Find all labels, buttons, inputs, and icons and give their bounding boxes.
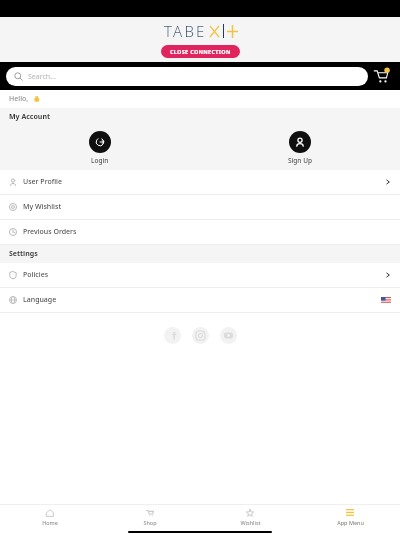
button[interactable]: Previous Orders [0,220,400,244]
staticText: Settings [9,249,38,259]
staticText: Login [91,156,109,165]
staticText: My Wishlist [23,202,62,212]
button[interactable]: Facebook [164,327,181,344]
button[interactable]: CLOSE CONNECTION [161,45,240,58]
button[interactable]: Language [0,288,400,312]
staticText: Hello, [9,94,29,104]
button[interactable]: Instagram [192,327,209,344]
staticText: Sign Up [288,156,312,165]
staticText: Wishlist [240,519,261,526]
staticText: Search... [28,72,56,82]
button[interactable]: Policies [0,263,400,287]
staticText: CLOSE CONNECTION [170,48,231,55]
staticText: Policies [23,270,49,280]
button[interactable]: User Profile [0,170,400,194]
button[interactable]: Cart [368,63,394,89]
staticText: Language [23,295,57,305]
staticText: App Menu [337,519,364,526]
button[interactable]: Wishlist [200,505,300,529]
button[interactable]: Shop [100,505,200,529]
button[interactable]: Home [0,505,100,529]
button[interactable]: My Wishlist [0,195,400,219]
staticText: Home [42,519,58,526]
button[interactable]: Sign Up [288,131,312,165]
staticText: Shop [143,519,157,526]
staticText: TABE [164,21,207,41]
button[interactable]: Login [89,131,111,165]
staticText: My Account [9,112,50,122]
button[interactable]: Search... [6,67,368,86]
button[interactable]: App Menu [300,505,400,529]
staticText: User Profile [23,177,63,187]
button[interactable]: YouTube [220,327,237,344]
staticText: Previous Orders [23,227,77,237]
